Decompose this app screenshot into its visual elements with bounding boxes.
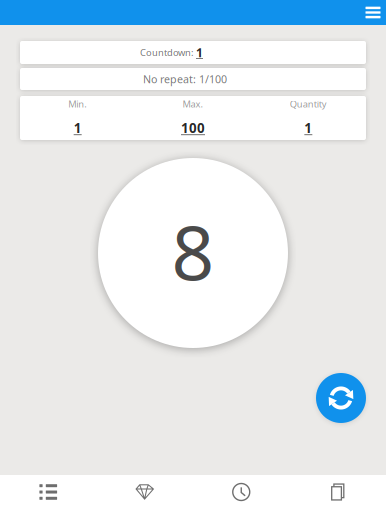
staticText: No repeat: 1/100 [143, 72, 227, 86]
button[interactable]: No repeat: 1/100 [20, 68, 366, 90]
staticText: 1 [196, 44, 203, 60]
staticText: Max. [182, 98, 203, 110]
staticText: 1 [74, 119, 82, 137]
staticText: Quantity [290, 98, 327, 110]
button[interactable]: Menu [356, 0, 386, 25]
button[interactable]: Clipboard [289, 475, 386, 512]
staticText: 1 [304, 119, 312, 137]
staticText: 8 [171, 201, 214, 301]
staticText: Countdown: [140, 46, 196, 59]
button[interactable]: Refresh [316, 373, 366, 423]
staticText: Min. [68, 98, 87, 110]
staticText: 100 [181, 119, 205, 137]
button[interactable]: List [0, 475, 96, 512]
button[interactable]: Countdown: [20, 41, 366, 64]
button[interactable]: Gems [96, 475, 193, 512]
button[interactable]: History [193, 475, 289, 512]
